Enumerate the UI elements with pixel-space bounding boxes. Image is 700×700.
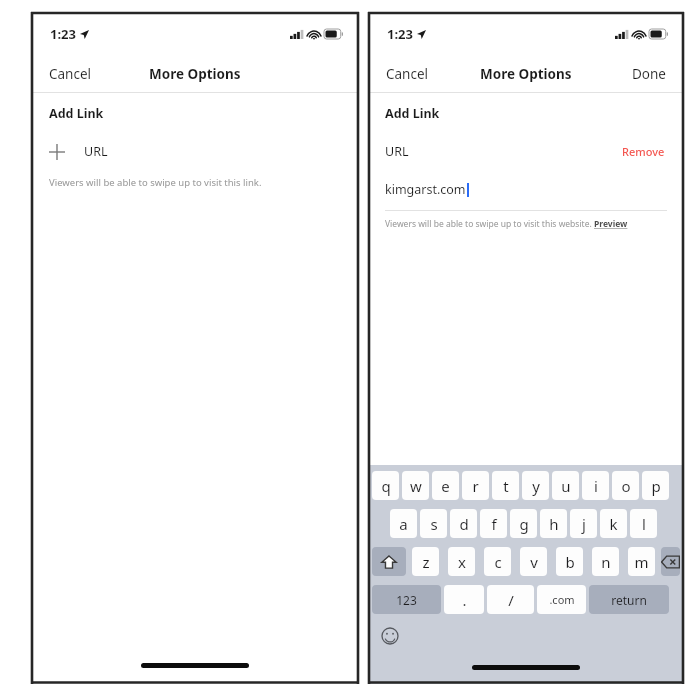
button[interactable]: k <box>600 509 627 538</box>
button[interactable]: s <box>420 509 447 538</box>
button[interactable]: Done <box>624 59 674 89</box>
staticText: Add Link <box>49 105 104 122</box>
button[interactable]: w <box>402 471 429 500</box>
staticText: f <box>491 514 497 534</box>
button[interactable]: z <box>412 547 439 576</box>
button[interactable]: Cancel <box>41 59 100 89</box>
staticText: Add Link <box>385 105 440 122</box>
staticText: t <box>503 476 509 496</box>
staticText: b <box>565 552 575 572</box>
button[interactable]: x <box>448 547 475 576</box>
button[interactable]: URL <box>31 139 359 164</box>
staticText: URL <box>84 143 108 160</box>
button[interactable]: b <box>556 547 583 576</box>
button[interactable]: y <box>522 471 549 500</box>
staticText: i <box>594 476 598 496</box>
button[interactable]: g <box>510 509 537 538</box>
staticText: a <box>399 514 408 534</box>
staticText: Preview <box>594 218 628 230</box>
button[interactable]: q <box>372 471 399 500</box>
staticText: v <box>530 552 538 572</box>
staticText: kimgarst.com <box>385 181 466 198</box>
button[interactable]: Backspace <box>661 547 680 576</box>
staticText: w <box>410 476 422 496</box>
staticText: n <box>601 552 611 572</box>
button[interactable]: . <box>444 585 484 614</box>
staticText: r <box>472 476 479 496</box>
button[interactable]: n <box>592 547 619 576</box>
button[interactable]: p <box>642 471 669 500</box>
button[interactable]: Emoji <box>380 626 400 646</box>
staticText: Viewers will be able to swipe up to visi… <box>49 176 262 189</box>
button[interactable]: h <box>540 509 567 538</box>
button[interactable]: a <box>390 509 417 538</box>
button[interactable]: .com <box>537 585 586 614</box>
staticText: h <box>549 514 559 534</box>
button[interactable]: t <box>492 471 519 500</box>
staticText: y <box>532 476 540 496</box>
staticText: j <box>582 514 586 534</box>
staticText: Cancel <box>49 65 92 83</box>
staticText: g <box>519 514 529 534</box>
staticText: p <box>651 476 661 496</box>
staticText: s <box>430 514 438 534</box>
button[interactable]: r <box>462 471 489 500</box>
button[interactable]: l <box>630 509 657 538</box>
staticText: / <box>508 590 514 610</box>
staticText: d <box>459 514 469 534</box>
staticText: Cancel <box>386 65 429 83</box>
staticText: x <box>458 552 466 572</box>
button[interactable]: o <box>612 471 639 500</box>
button[interactable]: Remove <box>620 141 667 162</box>
button[interactable]: i <box>582 471 609 500</box>
staticText: 1:23 <box>50 25 76 43</box>
button[interactable]: m <box>628 547 655 576</box>
staticText: More Options <box>480 65 572 83</box>
staticText: Remove <box>622 144 665 159</box>
staticText: More Options <box>149 65 241 83</box>
button[interactable]: / <box>487 585 534 614</box>
button[interactable]: j <box>570 509 597 538</box>
button[interactable]: 123 <box>372 585 441 614</box>
staticText: c <box>494 552 502 572</box>
button[interactable]: c <box>484 547 511 576</box>
button[interactable]: e <box>432 471 459 500</box>
button[interactable]: d <box>450 509 477 538</box>
staticText: return <box>611 592 647 608</box>
staticText: l <box>642 514 646 534</box>
button[interactable]: f <box>480 509 507 538</box>
staticText: k <box>609 514 618 534</box>
staticText: 1:23 <box>387 25 413 43</box>
staticText: Done <box>632 65 666 83</box>
button[interactable]: Shift <box>372 547 406 576</box>
staticText: 123 <box>396 592 417 608</box>
staticText: m <box>634 552 649 572</box>
button[interactable]: Cancel <box>378 59 437 89</box>
button[interactable]: Preview <box>594 218 628 230</box>
button[interactable]: v <box>520 547 547 576</box>
staticText: Viewers will be able to swipe up to visi… <box>385 218 594 230</box>
staticText: . <box>462 590 467 610</box>
staticText: e <box>441 476 450 496</box>
staticText: q <box>381 476 391 496</box>
staticText: .com <box>549 592 575 607</box>
staticText: URL <box>385 143 409 160</box>
staticText: u <box>561 476 571 496</box>
staticText: z <box>422 552 430 572</box>
button[interactable]: u <box>552 471 579 500</box>
staticText: o <box>621 476 631 496</box>
button[interactable]: return <box>589 585 669 614</box>
